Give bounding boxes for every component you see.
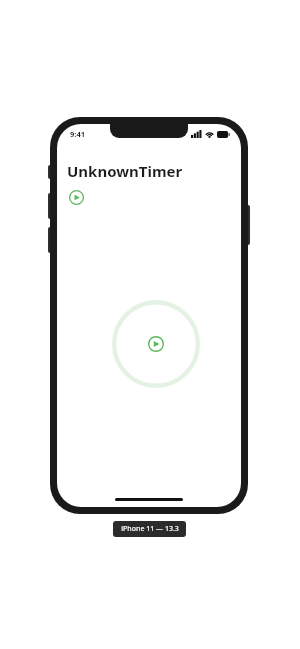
button[interactable]: Start timer <box>67 188 85 206</box>
staticText: iPhone 11 — 13.3 <box>121 524 179 534</box>
button[interactable]: Play <box>145 333 167 355</box>
staticText: 9:41 <box>70 129 85 139</box>
staticText: UnknownTimer <box>67 161 183 181</box>
